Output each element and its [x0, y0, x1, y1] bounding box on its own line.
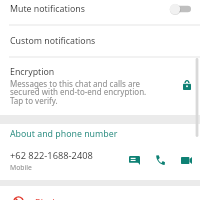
staticText: +62 822-1688-2408	[10, 149, 93, 162]
button[interactable]: Block	[0, 186, 200, 200]
staticText: About and phone number	[10, 128, 118, 140]
button[interactable]: +62 822-1688-2408	[0, 144, 200, 180]
staticText: Custom notifications	[10, 35, 96, 47]
button[interactable]: Call	[156, 155, 165, 165]
staticText: Mute notifications	[10, 3, 170, 15]
staticText: Messages to this chat and calls are secu…	[10, 78, 158, 106]
button[interactable]: Video call	[181, 157, 192, 164]
button[interactable]: Mute notifications	[0, 0, 200, 24]
button[interactable]: Message	[129, 156, 140, 165]
staticText: Block	[35, 197, 58, 200]
button[interactable]: Custom notifications	[0, 26, 200, 56]
staticText: Mobile	[10, 163, 32, 172]
button[interactable]: Mute notifications	[170, 3, 191, 15]
staticText: Encryption	[10, 66, 55, 78]
button[interactable]: About and phone number	[0, 124, 200, 144]
button[interactable]: Encryption	[0, 58, 200, 115]
